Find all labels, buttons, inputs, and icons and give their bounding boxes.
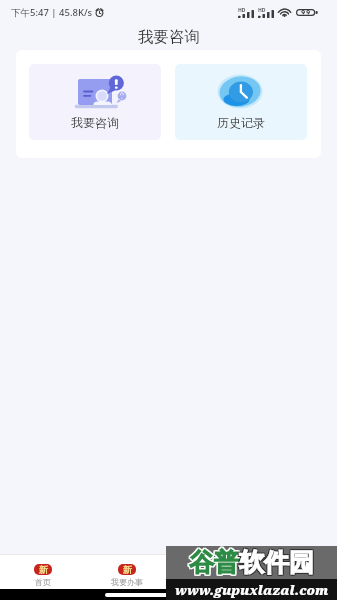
staticText: 谷普 <box>189 548 239 579</box>
button[interactable]: 新 <box>169 557 253 587</box>
button[interactable]: 新 <box>253 557 337 587</box>
staticText: 我的消息 <box>195 577 227 587</box>
staticText: 软件园 <box>240 546 315 577</box>
staticText: 谷普 <box>189 547 239 578</box>
staticText: 谷普 <box>188 548 238 579</box>
staticText: 历史记录 <box>217 115 265 130</box>
staticText: 谷普 <box>188 546 238 577</box>
staticText: 我要咨询 <box>138 27 200 47</box>
staticText: 首页 <box>35 577 51 587</box>
button[interactable]: 新 <box>0 557 85 587</box>
staticText: 下午5:47 | 45.8K/s <box>11 6 93 19</box>
staticText: 软件园 <box>240 548 315 579</box>
staticText: 软件园 <box>239 547 314 578</box>
button[interactable]: 新 <box>85 557 169 587</box>
staticText: 谷普 <box>188 547 238 578</box>
staticText: 软件园 <box>238 548 313 579</box>
staticText: 新 <box>207 564 216 575</box>
staticText: 我要办事 <box>111 577 143 587</box>
staticText: 个人中心 <box>279 577 311 587</box>
staticText: HD <box>258 7 266 14</box>
staticText: 谷普 <box>189 546 239 577</box>
staticText: 软件园 <box>238 547 313 578</box>
staticText: 我要咨询 <box>71 115 119 130</box>
button[interactable]: 历史记录 <box>175 64 307 140</box>
staticText: www.gupuxlazal.com <box>175 581 329 599</box>
staticText: HD <box>238 7 246 14</box>
staticText: 新 <box>39 564 48 575</box>
staticText: 新 <box>291 564 300 575</box>
staticText: 软件园 <box>239 546 314 577</box>
staticText: 谷普 <box>190 548 240 579</box>
staticText: 软件园 <box>239 548 314 579</box>
staticText: 软件园 <box>240 547 315 578</box>
staticText: 谷普 <box>190 546 240 577</box>
staticText: 谷普 <box>190 547 240 578</box>
staticText: 新 <box>123 564 132 575</box>
staticText: 软件园 <box>238 546 313 577</box>
button[interactable]: 我要咨询 <box>29 64 161 140</box>
